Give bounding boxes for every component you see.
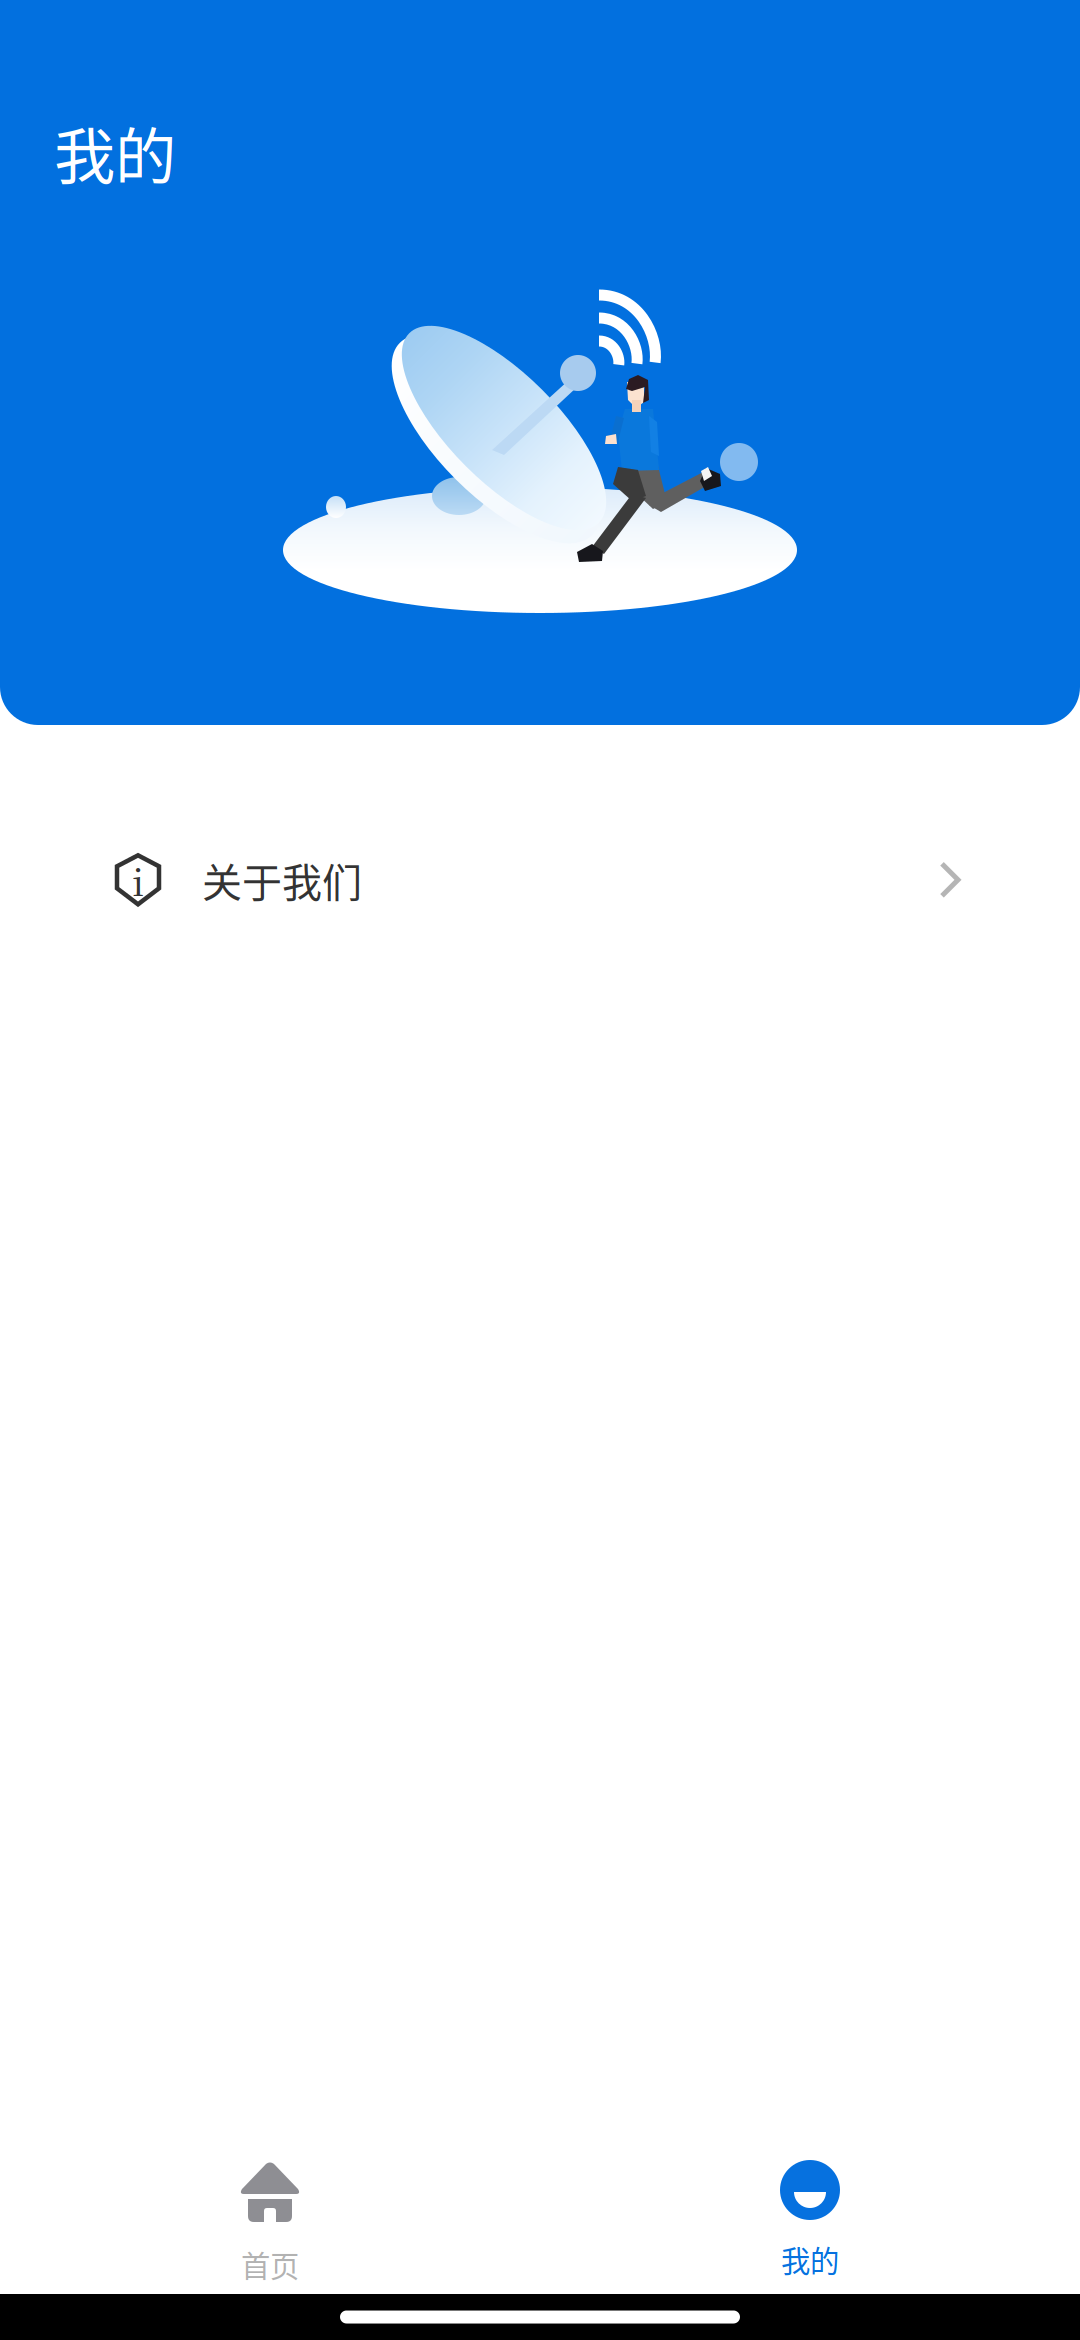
staticText: 我的 <box>54 108 176 197</box>
staticText: i <box>132 853 144 907</box>
staticText: 首页 <box>241 2243 299 2285</box>
button[interactable]: 首页 <box>0 2140 540 2294</box>
button[interactable]: i <box>0 800 1080 960</box>
staticText: 关于我们 <box>202 851 362 909</box>
staticText: 我的 <box>781 2238 839 2280</box>
button[interactable]: 我的 <box>540 2140 1080 2294</box>
